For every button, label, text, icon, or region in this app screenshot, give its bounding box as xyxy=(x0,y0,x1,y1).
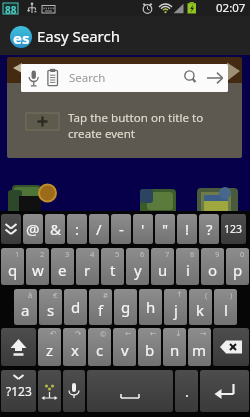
button[interactable]: Settings xyxy=(38,370,61,412)
button[interactable]: l xyxy=(214,289,237,325)
button[interactable]: ! xyxy=(177,214,197,244)
staticText: 3 xyxy=(65,249,70,259)
button[interactable]: q xyxy=(1,248,24,285)
staticText: j xyxy=(174,300,178,320)
staticText: 0 xyxy=(240,249,245,259)
button[interactable]: " xyxy=(155,214,175,244)
button[interactable]: b xyxy=(138,328,161,366)
staticText: q xyxy=(8,260,18,280)
button[interactable]: Backspace xyxy=(213,328,249,366)
button[interactable]: f xyxy=(89,289,112,325)
staticText: n xyxy=(170,340,180,360)
button[interactable]: Space xyxy=(87,370,173,412)
staticText: 9 xyxy=(215,249,220,259)
staticText: ' xyxy=(141,219,145,239)
button[interactable]: y xyxy=(126,248,149,285)
staticText: 4 xyxy=(90,249,95,259)
staticText: f xyxy=(98,300,104,320)
staticText: 02:07 xyxy=(216,0,246,16)
staticText: k xyxy=(196,300,205,320)
staticText: " xyxy=(162,219,169,239)
staticText: w xyxy=(32,260,44,280)
button[interactable]: s xyxy=(39,289,62,325)
staticText: Tap the button on title to xyxy=(68,110,204,126)
button[interactable]: / xyxy=(89,214,109,244)
staticText: d xyxy=(71,297,81,317)
button[interactable]: e xyxy=(51,248,74,285)
button[interactable]: z xyxy=(38,328,61,366)
staticText: s xyxy=(47,300,55,320)
button[interactable]: Voice input xyxy=(63,370,85,412)
staticText: 123 xyxy=(224,222,243,236)
button[interactable]: : xyxy=(67,214,87,244)
button[interactable]: - xyxy=(111,214,131,244)
button[interactable]: x xyxy=(63,328,86,366)
button[interactable]: a xyxy=(14,289,37,325)
staticText: m xyxy=(192,340,207,360)
staticText: Search xyxy=(69,70,106,86)
button[interactable]: & xyxy=(45,214,65,244)
button[interactable]: n xyxy=(163,328,186,366)
button[interactable]: u xyxy=(151,248,174,285)
staticText: / xyxy=(96,219,102,239)
button[interactable]: j xyxy=(164,289,187,325)
staticText: v xyxy=(121,340,129,360)
staticText: g xyxy=(121,297,131,317)
staticText: 1 xyxy=(15,249,20,259)
button[interactable]: k xyxy=(189,289,212,325)
button[interactable]: ?123 xyxy=(1,370,36,412)
staticText: ← xyxy=(150,329,157,338)
staticText: € xyxy=(53,290,58,300)
staticText: t xyxy=(110,260,116,280)
staticText: ↶ xyxy=(50,329,57,338)
staticText: ↓ xyxy=(175,329,182,338)
staticText: @ xyxy=(26,219,40,239)
button[interactable]: @ xyxy=(23,214,43,244)
button[interactable]: g xyxy=(114,289,137,325)
staticText: z xyxy=(46,340,54,360)
staticText: 8 xyxy=(190,249,195,259)
staticText: ↷ xyxy=(75,329,82,338)
button[interactable]: v xyxy=(113,328,136,366)
staticText: 5 xyxy=(115,249,120,259)
button[interactable]: m xyxy=(188,328,211,366)
staticText: Easy Search xyxy=(37,26,120,46)
button[interactable]: t xyxy=(101,248,124,285)
staticText: o xyxy=(208,260,218,280)
staticText: 88 xyxy=(5,3,17,17)
staticText: ) xyxy=(230,290,233,300)
button[interactable]: i xyxy=(176,248,199,285)
staticText: p xyxy=(233,260,243,280)
button[interactable]: . xyxy=(175,370,198,412)
staticText: - xyxy=(119,219,124,239)
button[interactable]: Shift xyxy=(1,328,36,366)
staticText: 2 xyxy=(40,249,45,259)
staticText: l xyxy=(224,300,228,320)
staticText: i xyxy=(186,260,190,280)
button[interactable]: c xyxy=(88,328,111,366)
button[interactable]: h xyxy=(139,289,162,325)
staticText: & xyxy=(50,219,61,239)
button[interactable]: Search box xyxy=(21,64,228,92)
button[interactable]: Create event xyxy=(26,113,59,130)
button[interactable]: p xyxy=(226,248,249,285)
staticText: å xyxy=(28,290,33,300)
staticText: ← xyxy=(125,329,132,338)
button[interactable]: r xyxy=(76,248,99,285)
button[interactable]: ' xyxy=(133,214,153,244)
button[interactable]: Enter xyxy=(200,370,249,412)
button[interactable]: Easy Search app icon xyxy=(10,26,32,48)
button[interactable]: w xyxy=(26,248,49,285)
button[interactable]: d xyxy=(64,289,87,325)
button[interactable]: o xyxy=(201,248,224,285)
button[interactable]: ? xyxy=(199,214,219,244)
staticText: x xyxy=(71,340,79,360)
staticText: ? xyxy=(206,219,213,239)
staticText: ?123 xyxy=(6,383,32,399)
staticText: h xyxy=(146,297,156,317)
staticText: : xyxy=(75,219,80,239)
button[interactable]: 123 xyxy=(221,214,246,244)
button[interactable]: Hide keyboard xyxy=(1,214,21,244)
staticText: es xyxy=(13,28,30,48)
staticText: © xyxy=(100,329,107,339)
